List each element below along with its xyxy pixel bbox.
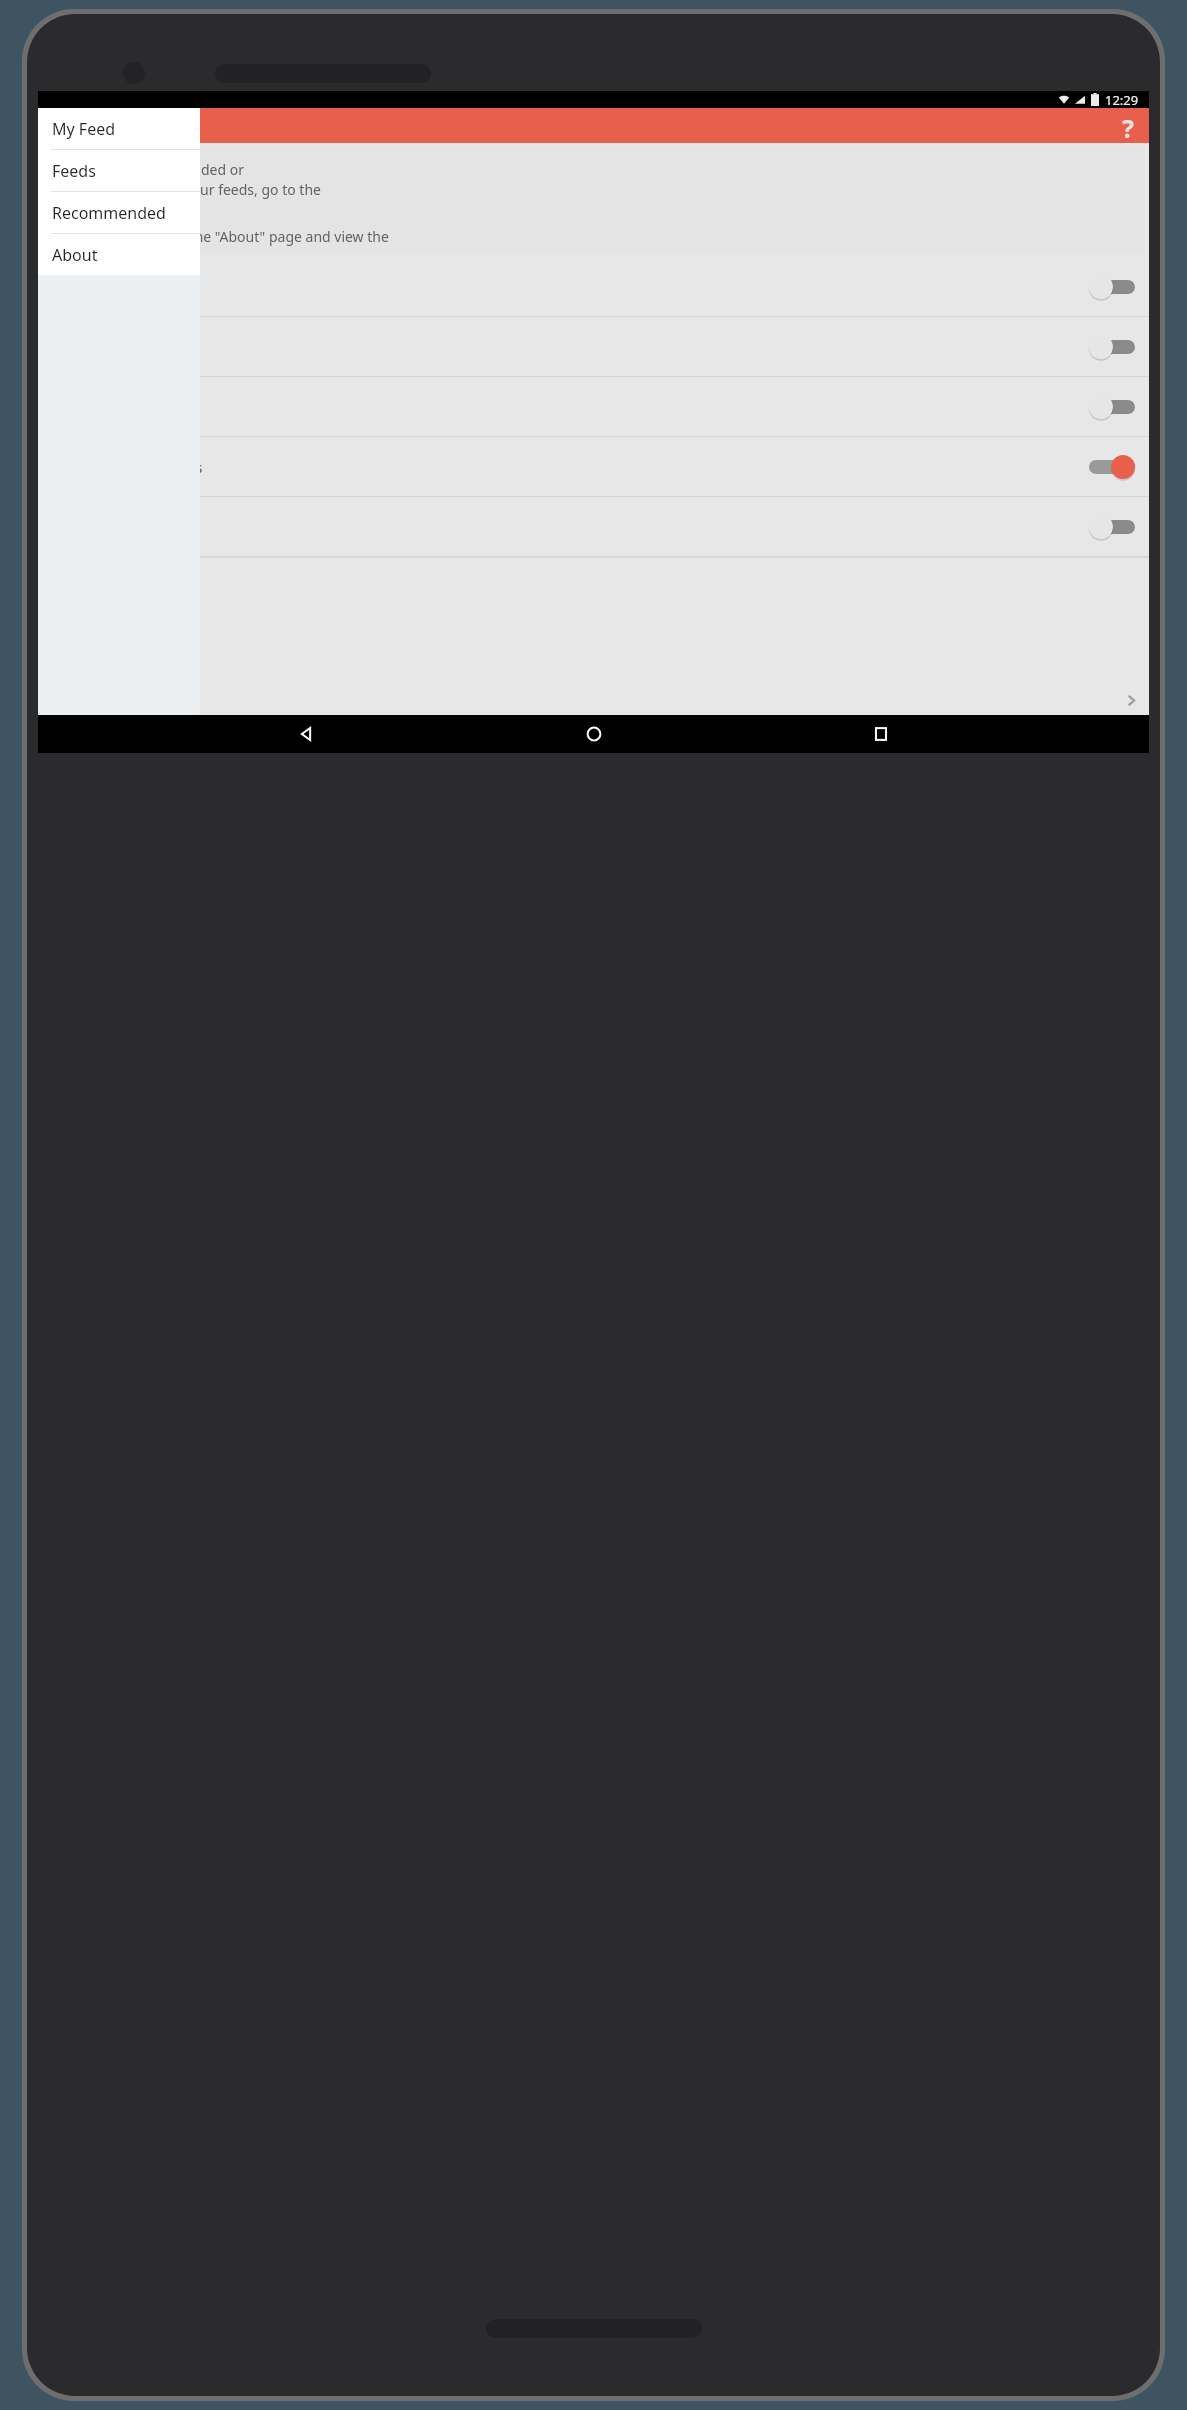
button[interactable]: My Feed (38, 108, 200, 149)
button[interactable]: About (38, 234, 200, 275)
staticText: Digital Trends (52, 277, 1089, 297)
button[interactable]: Android Planet (38, 377, 1149, 436)
staticText: Feeds can be easily added or removed. To… (55, 160, 321, 221)
staticText: About (52, 244, 98, 266)
staticText: Feeds (52, 160, 96, 182)
staticText: For more info, go to the "About" page an… (55, 227, 389, 253)
button[interactable]: Recommended (38, 192, 200, 233)
button[interactable]: Droid Life (38, 317, 1149, 376)
staticText: Droid Life (52, 337, 1089, 357)
staticText: Android Planet (52, 397, 1089, 417)
staticText: ? (1122, 111, 1134, 141)
button[interactable]: Phandroid (38, 497, 1149, 556)
staticText: 12:29 (1105, 91, 1139, 108)
button[interactable]: Help (1113, 111, 1143, 141)
button[interactable]: Feeds (38, 150, 200, 191)
button[interactable]: Home (575, 715, 613, 753)
staticText: Recommended (52, 202, 166, 224)
button[interactable]: Digital Trends (38, 257, 1149, 316)
staticText: Phandroid (52, 517, 1089, 537)
staticText: My Feed (52, 118, 116, 140)
button[interactable]: Recent apps (862, 715, 900, 753)
staticText: Android Player/Afirus (52, 457, 1089, 477)
button[interactable]: Android Player/Afirus (38, 437, 1149, 496)
button[interactable]: Back (287, 715, 325, 753)
